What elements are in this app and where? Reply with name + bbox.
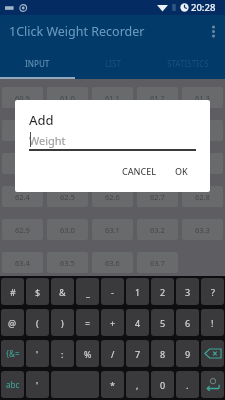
staticText: 60.9: [15, 93, 30, 103]
staticText: ': [36, 348, 39, 360]
button[interactable]: *: [101, 371, 124, 398]
button[interactable]: ': [26, 340, 49, 367]
button[interactable]: ?: [201, 278, 224, 305]
button[interactable]: 2: [151, 278, 174, 305]
button[interactable]: 61.2: [137, 87, 178, 108]
button[interactable]: ,: [126, 371, 149, 398]
button[interactable]: _: [76, 278, 99, 305]
button[interactable]: Enter: [201, 371, 224, 398]
button[interactable]: $: [26, 278, 49, 305]
staticText: 1: [135, 286, 141, 298]
button[interactable]: ): [51, 309, 74, 336]
staticText: %: [84, 348, 92, 360]
button[interactable]: 62.6: [92, 186, 133, 207]
staticText: 63.5: [60, 258, 75, 268]
button[interactable]: %: [76, 340, 99, 367]
button[interactable]: /: [101, 340, 124, 367]
button[interactable]: 61.4: [2, 120, 43, 141]
staticText: Add: [29, 111, 54, 129]
button[interactable]: 61.8: [182, 120, 223, 141]
button[interactable]: 61.5: [47, 120, 88, 141]
staticText: +: [110, 317, 116, 329]
staticText: 5: [160, 317, 166, 329]
button[interactable]: 63.7: [137, 252, 178, 273]
button[interactable]: &: [51, 278, 74, 305]
button[interactable]: =: [76, 309, 99, 336]
button[interactable]: 63.3: [182, 219, 223, 240]
button[interactable]: 63.4: [2, 252, 43, 273]
button[interactable]: @: [1, 309, 24, 336]
button[interactable]: 1: [126, 278, 149, 305]
staticText: ': [36, 379, 39, 391]
button[interactable]: 61.3: [182, 87, 223, 108]
button[interactable]: 63.2: [137, 219, 178, 240]
staticText: 61.1: [105, 93, 120, 103]
button[interactable]: 62.9: [2, 219, 43, 240]
staticText: 7: [135, 348, 141, 360]
button[interactable]: 9: [176, 340, 199, 367]
button[interactable]: abc: [1, 371, 24, 398]
button[interactable]: INPUT: [0, 47, 75, 79]
button[interactable]: 6: [176, 309, 199, 336]
staticText: 61.0: [60, 93, 75, 103]
button[interactable]: 62.8: [182, 186, 223, 207]
other: Backspace: [205, 349, 221, 358]
button[interactable]: 3: [176, 278, 199, 305]
button[interactable]: {&=: [1, 340, 24, 367]
button[interactable]: 5: [151, 309, 174, 336]
button[interactable]: OK: [172, 162, 191, 180]
button[interactable]: 62.5: [47, 186, 88, 207]
staticText: /: [111, 348, 115, 360]
button[interactable]: 62.4: [2, 186, 43, 207]
button[interactable]: 63.6: [92, 252, 133, 273]
button[interactable]: 62.1: [92, 153, 133, 174]
button[interactable]: 61.0: [47, 87, 88, 108]
button[interactable]: 63.1: [92, 219, 133, 240]
button[interactable]: 63.0: [47, 219, 88, 240]
button[interactable]: 61.1: [92, 87, 133, 108]
staticText: *: [110, 379, 115, 391]
button[interactable]: 62.2: [137, 153, 178, 174]
staticText: 4: [135, 317, 141, 329]
button[interactable]: More options: [201, 15, 225, 47]
button[interactable]: !: [201, 309, 224, 336]
staticText: 62.7: [150, 192, 165, 202]
button[interactable]: 62.7: [137, 186, 178, 207]
button[interactable]: 8: [151, 340, 174, 367]
staticText: (: [36, 317, 39, 329]
button[interactable]: 63.5: [47, 252, 88, 273]
staticText: 61.2: [150, 93, 165, 103]
button[interactable]: (: [26, 309, 49, 336]
button[interactable]: STATISTICS: [150, 47, 225, 79]
button[interactable]: 0: [151, 371, 174, 398]
staticText: -: [111, 286, 114, 298]
button[interactable]: 61.9: [2, 153, 43, 174]
staticText: INPUT: [25, 58, 50, 69]
button[interactable]: 7: [126, 340, 149, 367]
staticText: 63.6: [105, 258, 120, 268]
staticText: {&=: [6, 348, 20, 359]
button[interactable]: :: [51, 340, 74, 367]
staticText: 3: [185, 286, 191, 298]
button[interactable]: 62.3: [182, 153, 223, 174]
button[interactable]: ': [26, 371, 49, 398]
button[interactable]: 4: [126, 309, 149, 336]
button[interactable]: Backspace: [201, 340, 224, 367]
button[interactable]: +: [101, 309, 124, 336]
staticText: 62.4: [15, 192, 30, 202]
button[interactable]: .: [176, 371, 199, 398]
button[interactable]: #: [1, 278, 24, 305]
button[interactable]: 60.9: [2, 87, 43, 108]
button[interactable]: CANCEL: [119, 162, 160, 180]
button[interactable]: -: [101, 278, 124, 305]
